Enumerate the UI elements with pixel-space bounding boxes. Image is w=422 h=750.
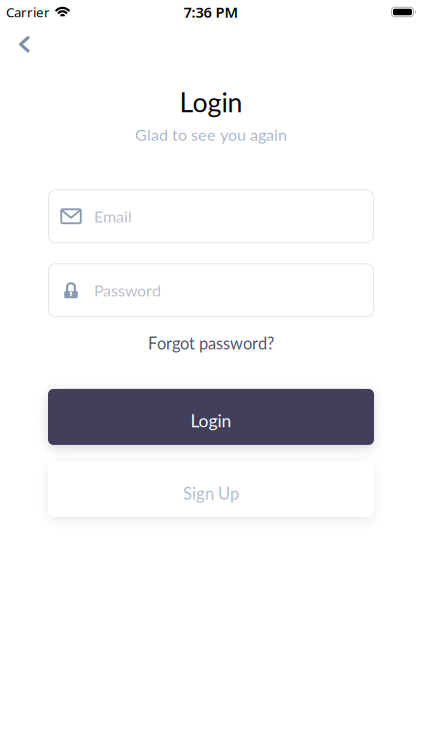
button[interactable]: Sign Up [48, 461, 374, 517]
button[interactable]: Password [48, 263, 374, 317]
staticText: Glad to see you again [135, 125, 287, 144]
button[interactable]: Forgot password? [148, 333, 274, 353]
staticText: Password [94, 281, 161, 300]
staticText: Carrier [6, 3, 50, 21]
staticText: Sign Up [183, 483, 239, 503]
button[interactable]: Email [48, 189, 374, 243]
staticText: Email [94, 207, 132, 226]
staticText: 7:36 PM [183, 2, 238, 22]
button[interactable] [0, 24, 28, 51]
button[interactable]: Login [48, 389, 374, 445]
staticText: Login [190, 410, 231, 431]
staticText: Login [179, 86, 242, 118]
staticText: Forgot password? [148, 333, 274, 353]
